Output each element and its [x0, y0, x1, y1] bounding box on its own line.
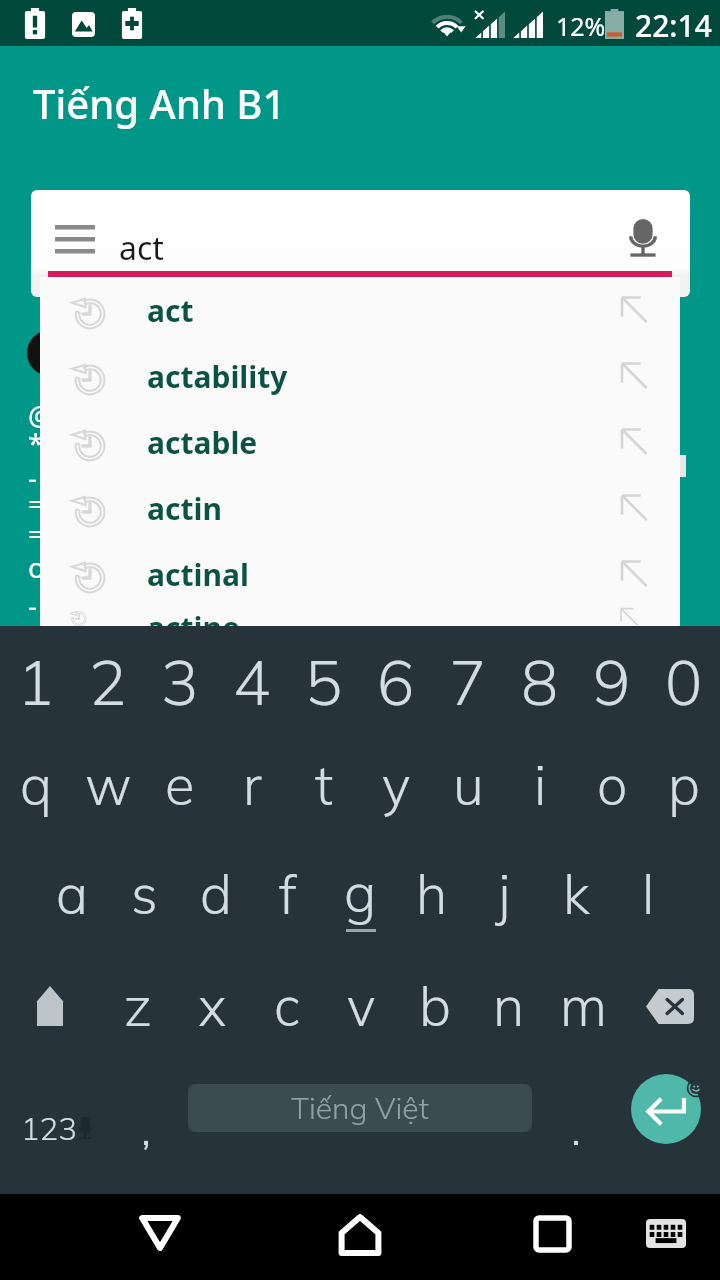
staticText: 12% [556, 9, 606, 43]
staticText: 5 [305, 643, 343, 721]
staticText: * [28, 424, 44, 462]
button[interactable]: 0 [648, 628, 720, 736]
button[interactable]: actin [40, 475, 680, 541]
staticText: 22:14 [635, 5, 712, 46]
button[interactable]: i [504, 730, 576, 840]
staticText: n [493, 972, 525, 1040]
staticText: 9 [593, 643, 631, 721]
staticText: Tiếng Anh B1 [33, 76, 286, 130]
button[interactable]: y [360, 730, 432, 840]
button[interactable]: o [576, 730, 648, 840]
button[interactable]: Menu [43, 207, 107, 271]
staticText: o [597, 751, 628, 819]
button[interactable]: j [468, 839, 540, 949]
button[interactable]: n [472, 950, 546, 1062]
staticText: 7 [449, 643, 487, 721]
staticText: act [119, 226, 164, 270]
staticText: 123 [21, 1109, 77, 1148]
staticText: actability [147, 356, 288, 397]
staticText: x [198, 972, 227, 1040]
staticText: act [147, 290, 194, 331]
staticText: f [279, 860, 297, 928]
staticText: g [344, 859, 377, 927]
staticText: , [141, 1099, 152, 1157]
button[interactable]: d [180, 839, 252, 949]
staticText: 4 [233, 643, 271, 721]
staticText: e [165, 751, 195, 819]
staticText: = [28, 514, 45, 552]
staticText: h [416, 860, 448, 928]
button[interactable]: r [216, 730, 288, 840]
button[interactable]: 5 [288, 628, 360, 736]
staticText: actin [147, 488, 222, 529]
staticText: @ [28, 396, 54, 434]
button[interactable]: actable [40, 409, 680, 475]
button[interactable]: z [100, 950, 175, 1062]
button[interactable]: 1 [0, 628, 72, 736]
staticText: 0 [665, 643, 703, 721]
staticText: r [243, 751, 262, 819]
button[interactable]: v [324, 950, 398, 1062]
staticText: d [200, 860, 232, 928]
button[interactable]: act [40, 277, 680, 343]
staticText: 1 [17, 643, 55, 721]
staticText: = [28, 484, 45, 522]
button[interactable]: l [612, 839, 684, 949]
staticText: j [498, 860, 511, 928]
button[interactable]: 9 [576, 628, 648, 736]
staticText: 6 [377, 643, 415, 721]
staticText: q [20, 751, 52, 819]
button[interactable]: 6 [360, 628, 432, 736]
button[interactable]: Home [320, 1196, 400, 1274]
button[interactable]: u [432, 730, 504, 840]
staticText: i [534, 751, 547, 819]
button[interactable]: h [396, 839, 468, 949]
button[interactable]: , [110, 1062, 182, 1194]
button[interactable]: x [175, 950, 250, 1062]
button[interactable]: e [144, 730, 216, 840]
button[interactable]: actine [40, 607, 680, 627]
staticText: a [56, 860, 88, 928]
button[interactable]: w [72, 730, 144, 840]
staticText: s [131, 860, 158, 928]
button[interactable]: Switch keyboard [626, 1194, 706, 1272]
button[interactable]: 2 [72, 628, 144, 736]
button[interactable]: k [540, 839, 612, 949]
button[interactable]: t [288, 730, 360, 840]
button[interactable]: f [252, 839, 324, 949]
button[interactable]: 7 [432, 628, 504, 736]
button[interactable]: 8 [504, 628, 576, 736]
button[interactable]: a [36, 839, 108, 949]
staticText: v [347, 972, 376, 1040]
button[interactable]: Voice search [612, 208, 674, 270]
button[interactable]: b [398, 950, 472, 1062]
button[interactable]: Recents [512, 1195, 592, 1273]
staticText: p [668, 751, 700, 819]
button[interactable]: Enter [631, 1074, 701, 1144]
button[interactable]: 123 [0, 1062, 112, 1194]
staticText: - [28, 586, 38, 624]
staticText: . [571, 1099, 582, 1157]
button[interactable]: Back [120, 1194, 200, 1272]
staticText: b [419, 972, 451, 1040]
button[interactable]: 4 [216, 628, 288, 736]
button[interactable]: . [540, 1062, 612, 1194]
staticText: l [642, 860, 655, 928]
staticText: t [315, 751, 334, 819]
button[interactable]: q [0, 730, 72, 840]
button[interactable]: Tiếng Việt [188, 1084, 532, 1132]
button[interactable]: s [108, 839, 180, 949]
button[interactable]: actability [40, 343, 680, 409]
button[interactable]: g [324, 839, 396, 949]
button[interactable]: Shift [0, 950, 100, 1062]
button[interactable]: actinal [40, 541, 680, 607]
staticText: z [124, 972, 152, 1040]
button[interactable]: 3 [144, 628, 216, 736]
button[interactable]: m [546, 950, 620, 1062]
staticText: 3 [161, 643, 199, 721]
button[interactable]: p [648, 730, 720, 840]
button[interactable]: Backspace [620, 950, 720, 1062]
staticText: ơ [28, 548, 46, 586]
button[interactable]: c [250, 950, 324, 1062]
staticText: c [274, 972, 301, 1040]
